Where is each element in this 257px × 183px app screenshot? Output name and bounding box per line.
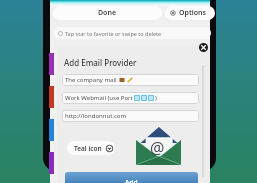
staticText: http://londonnut.com <box>65 112 127 120</box>
staticText: Teal icon <box>74 144 102 153</box>
staticText: Work Webmail (use Port <box>65 94 133 102</box>
button[interactable]: http://londonnut.com <box>62 110 199 122</box>
button[interactable]: Add <box>65 172 198 183</box>
button[interactable]: Options <box>165 6 215 20</box>
button[interactable]: Close <box>199 43 208 52</box>
staticText: Options <box>179 8 206 18</box>
button[interactable]: The company mail <box>62 74 199 86</box>
button[interactable]: Tap star to favorite or swipe to delete <box>54 27 211 39</box>
staticText: @ <box>150 137 165 159</box>
staticText: ) <box>155 94 157 102</box>
button[interactable]: Work Webmail (use Port <box>62 92 199 104</box>
staticText: Tap star to favorite or swipe to delete <box>65 30 162 37</box>
staticText: Done <box>98 8 117 18</box>
staticText: Add <box>125 178 138 183</box>
staticText: The company mail <box>65 76 117 84</box>
button[interactable]: Teal icon <box>67 141 115 155</box>
button[interactable]: Done <box>53 6 162 20</box>
staticText: Add Email Provider <box>64 57 137 68</box>
